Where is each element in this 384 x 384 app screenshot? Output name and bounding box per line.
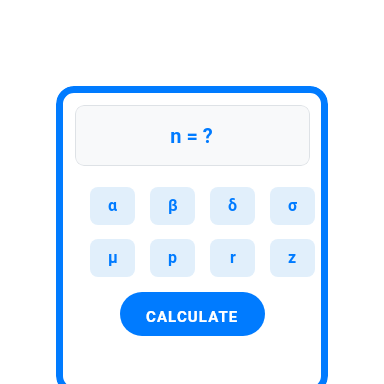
staticText: μ [108,248,118,267]
staticText: p [168,248,178,267]
button[interactable]: α [90,187,135,225]
staticText: β [168,196,178,215]
button[interactable]: δ [210,187,255,225]
button[interactable]: σ [270,187,315,225]
staticText: δ [228,196,238,215]
staticText: r [230,248,236,267]
staticText: α [108,196,118,215]
staticText: CALCULATE [146,308,239,326]
button[interactable]: p [150,239,195,277]
button[interactable]: r [210,239,255,277]
staticText: n = ? [170,124,213,147]
button[interactable]: β [150,187,195,225]
staticText: σ [288,196,298,215]
staticText: z [288,248,297,267]
button[interactable]: z [270,239,315,277]
button[interactable]: μ [90,239,135,277]
button[interactable]: CALCULATE [120,292,265,336]
